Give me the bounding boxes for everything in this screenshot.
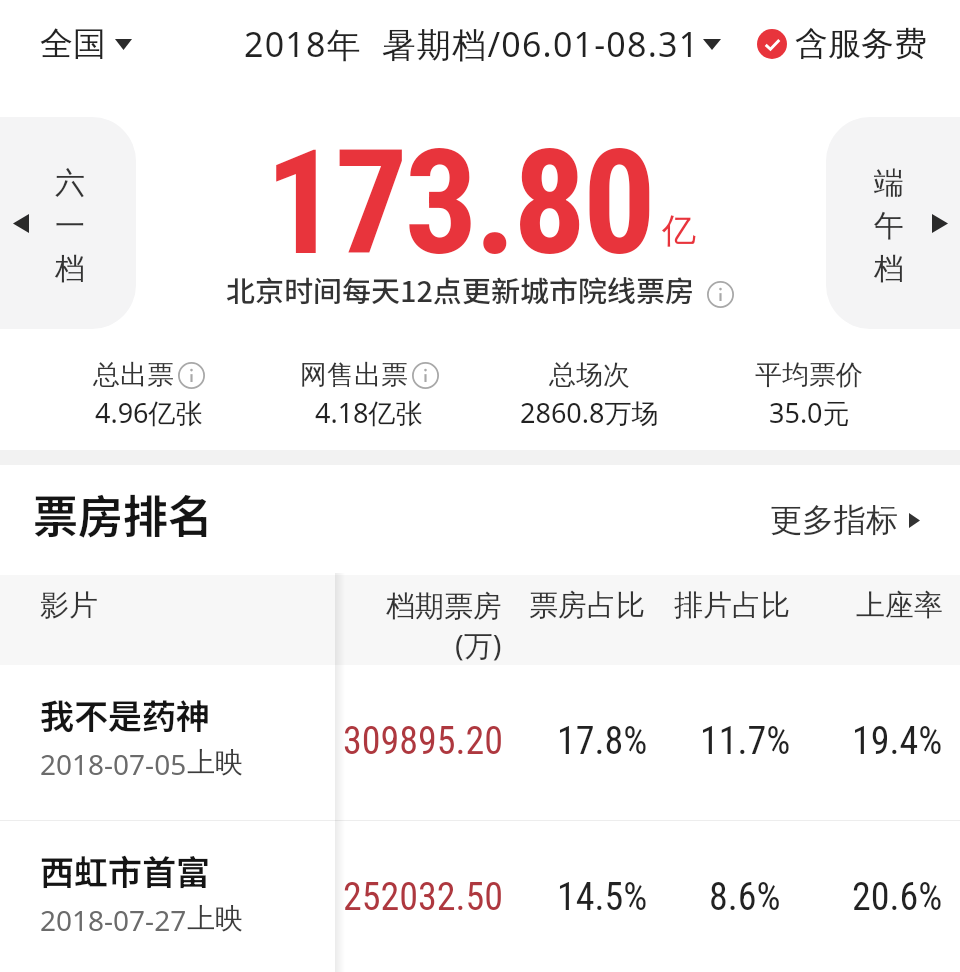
button[interactable]: 全国 (40, 23, 132, 65)
staticText: 14.5% (557, 875, 648, 920)
button[interactable]: 西虹市首富 (0, 821, 960, 972)
staticText: 西虹市首富 (40, 846, 210, 895)
button[interactable]: 我不是药神 (0, 665, 960, 820)
button[interactable]: 2018年 暑期档/06.01-08.31 (244, 21, 721, 67)
staticText: 4.96亿张 (95, 394, 203, 431)
staticText: 252032.50 (343, 875, 504, 920)
staticText: 档 (874, 250, 904, 288)
staticText: 173.80 (265, 118, 653, 288)
staticText: 20.6% (852, 875, 943, 920)
staticText: 六 (55, 164, 85, 202)
button[interactable]: 总场次 (479, 358, 699, 431)
staticText: 票房占比 (529, 587, 645, 624)
staticText: 票房排名 (33, 481, 214, 546)
staticText: 排片占比 (674, 587, 790, 624)
staticText: 午 (874, 207, 904, 245)
staticText: 11.7% (700, 719, 791, 764)
staticText: 2018-07-27 (40, 901, 187, 939)
button[interactable]: 含服务费 (757, 23, 927, 65)
staticText: 17.8% (557, 719, 648, 764)
button[interactable]: 平均票价 (699, 358, 919, 431)
staticText: 309895.20 (343, 719, 504, 764)
staticText: 我不是药神 (40, 690, 210, 739)
staticText: 总场次 (549, 358, 630, 392)
button[interactable]: 更多指标 (770, 500, 920, 540)
staticText: 2860.8万场 (520, 394, 659, 431)
staticText: 上座率 (856, 587, 943, 624)
staticText: 网售出票 (300, 358, 408, 392)
staticText: 含服务费 (795, 23, 927, 65)
staticText: 35.0元 (769, 394, 850, 431)
staticText: 2018年 暑期档/06.01-08.31 (244, 21, 700, 67)
staticText: 全国 (40, 23, 106, 65)
staticText: 4.18亿张 (315, 394, 423, 431)
staticText: 19.4% (852, 719, 943, 764)
staticText: 更多指标 (770, 500, 898, 540)
staticText: 档期票房 (386, 588, 502, 625)
staticText: 北京时间每天12点更新城市院线票房 (226, 268, 695, 310)
staticText: 影片 (40, 587, 98, 624)
staticText: 档 (55, 250, 85, 288)
staticText: (万) (455, 625, 502, 665)
staticText: 上映 (187, 901, 243, 936)
staticText: 端 (874, 164, 904, 202)
staticText: 亿 (662, 209, 696, 252)
staticText: 平均票价 (755, 358, 863, 392)
button[interactable]: 上一档期 六一档 (0, 117, 136, 329)
staticText: 2018-07-05 (40, 745, 187, 783)
staticText: 一 (55, 207, 85, 245)
button[interactable]: 网售出票 (259, 358, 479, 431)
staticText: 总出票 (93, 358, 174, 392)
staticText: 上映 (187, 745, 243, 780)
staticText: 8.6% (709, 875, 781, 920)
button[interactable]: 总出票 (38, 358, 259, 431)
button[interactable]: 下一档期 端午档 (826, 117, 960, 329)
